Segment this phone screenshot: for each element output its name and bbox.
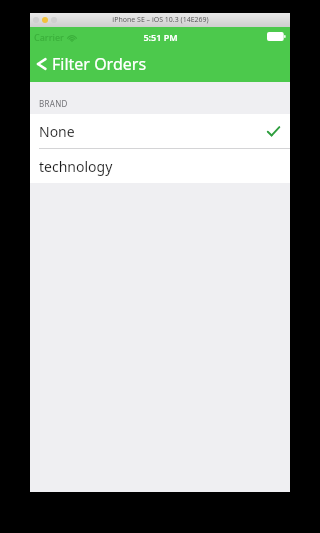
staticText: Carrier [34, 31, 64, 43]
button[interactable]: None [30, 114, 290, 148]
staticText: technology [39, 157, 113, 176]
button[interactable]: technology [30, 149, 290, 183]
staticText: BRAND [39, 98, 68, 109]
staticText: None [39, 122, 75, 141]
button[interactable]: Back [30, 46, 155, 82]
staticText: 5:51 PM [143, 31, 178, 43]
staticText: iPhone SE – iOS 10.3 (14E269) [112, 15, 209, 25]
staticText: Filter Orders [52, 53, 147, 75]
